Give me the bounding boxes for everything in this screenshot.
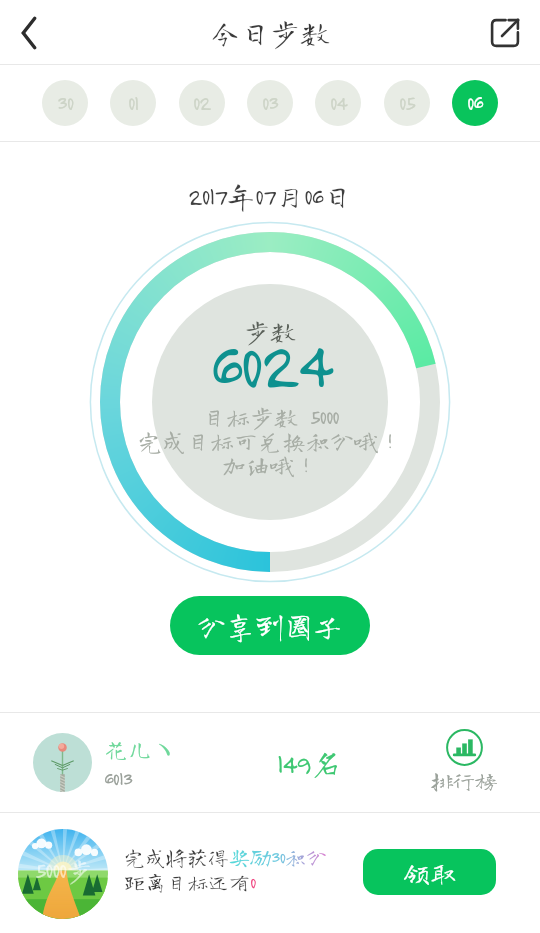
staticText: 05 <box>399 91 415 115</box>
staticText: 6024 <box>210 325 330 403</box>
staticText: 6013 <box>104 767 132 790</box>
button[interactable]: 排行榜 <box>431 729 497 792</box>
staticText: 步数 <box>244 318 297 344</box>
staticText: 加油哦！ <box>222 453 318 477</box>
staticText: 01 <box>128 91 139 115</box>
staticText: 30 <box>57 91 74 115</box>
button[interactable]: 分享到圈子 <box>170 596 370 655</box>
staticText: 02 <box>193 91 211 115</box>
staticText: 分享到圈子 <box>197 611 343 640</box>
button[interactable]: 02 <box>179 80 225 126</box>
staticText: 0 <box>250 872 256 893</box>
button[interactable]: Share <box>481 9 529 57</box>
staticText: 04 <box>330 91 347 115</box>
staticText: 5000步 <box>35 857 92 883</box>
staticText: 今日步数 <box>210 18 330 48</box>
staticText: 06 <box>467 91 483 115</box>
staticText: 花儿ヽ <box>104 735 176 765</box>
button[interactable]: 01 <box>110 80 156 126</box>
button[interactable]: 花儿ヽ <box>0 713 540 812</box>
button[interactable]: 05 <box>384 80 430 126</box>
button[interactable]: 03 <box>247 80 293 126</box>
staticText: 完成目标可兑换积分哦！ <box>138 429 402 453</box>
button[interactable]: 领取 <box>363 849 496 895</box>
staticText: 奖励30积分 <box>229 847 328 868</box>
staticText: 距离目标还有 <box>124 872 250 893</box>
staticText: 149名 <box>277 747 342 779</box>
staticText: 03 <box>262 91 279 115</box>
button[interactable]: 04 <box>315 80 361 126</box>
button[interactable]: 06 <box>452 80 498 126</box>
staticText: 排行榜 <box>431 770 497 792</box>
staticText: 领取 <box>403 859 457 886</box>
staticText: 完成将获得 <box>124 847 229 868</box>
staticText: 目标步数 5000 <box>202 405 339 429</box>
button[interactable]: 30 <box>42 80 88 126</box>
staticText: 2017年07月06日 <box>188 181 352 210</box>
button[interactable]: Back <box>2 6 56 60</box>
